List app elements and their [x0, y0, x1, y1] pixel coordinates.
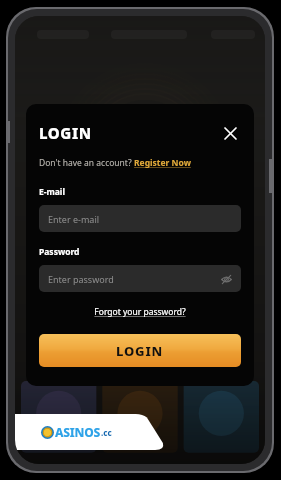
staticText: Enter password — [48, 273, 114, 285]
staticText: E-mail — [39, 186, 65, 198]
staticText: Don't have an account? — [39, 157, 134, 169]
button[interactable]: Show password — [218, 271, 234, 287]
button[interactable]: Enter e-mail — [39, 205, 241, 232]
staticText: .cc — [101, 427, 112, 438]
staticText: LOGIN — [39, 123, 92, 143]
button[interactable]: Close — [219, 122, 241, 144]
button[interactable]: Enter password — [39, 265, 241, 292]
staticText: Register Now — [134, 157, 191, 169]
staticText: Enter e-mail — [48, 213, 100, 225]
button[interactable]: LOGIN — [39, 334, 241, 367]
button[interactable]: Register Now — [134, 157, 191, 169]
staticText: ASINOS — [55, 424, 101, 440]
staticText: Password — [39, 246, 80, 258]
staticText: LOGIN — [116, 342, 164, 360]
button[interactable]: Forgot your password? — [94, 306, 186, 318]
staticText: Forgot your password? — [94, 306, 186, 318]
